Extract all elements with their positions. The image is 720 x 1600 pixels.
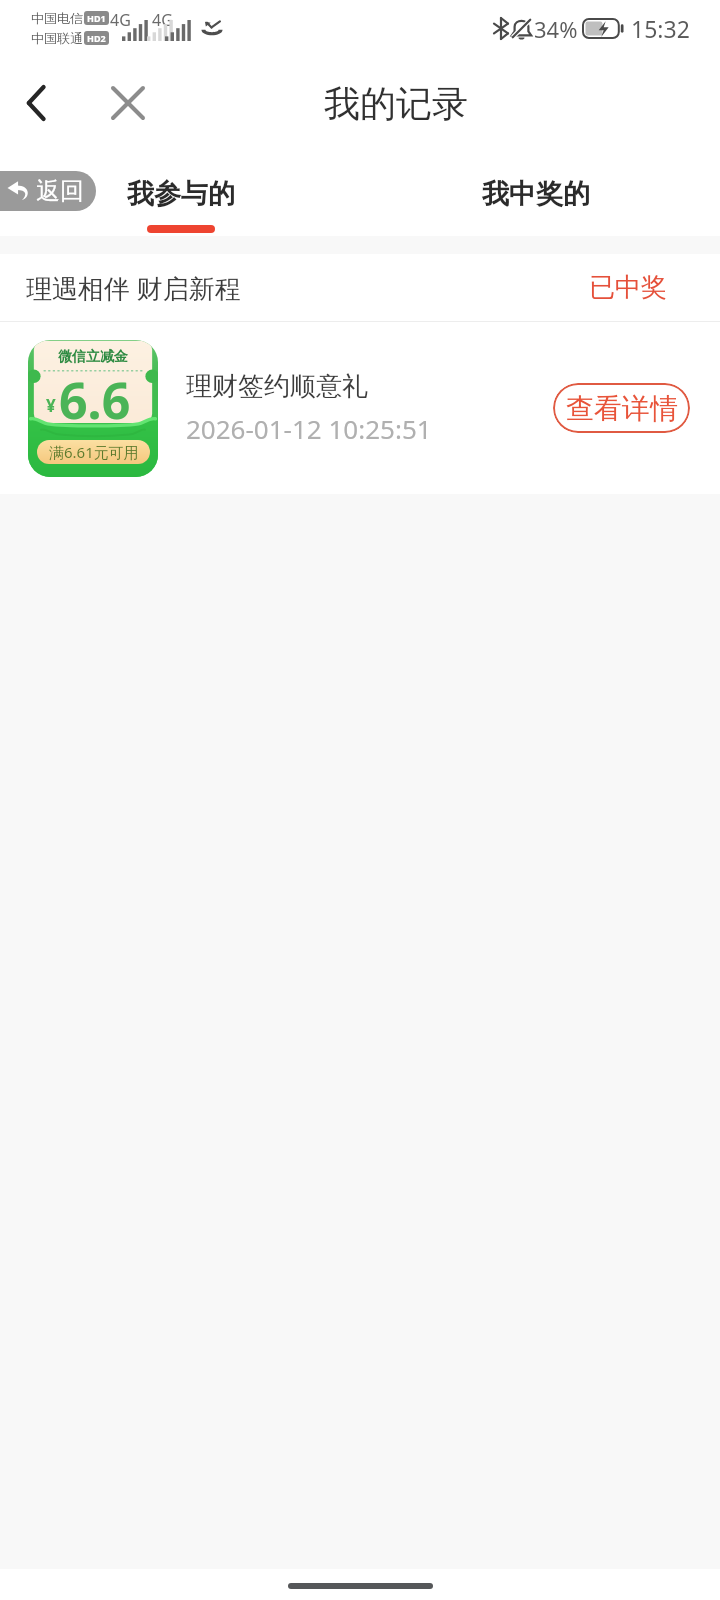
button[interactable]: 我中奖的 — [482, 177, 590, 233]
staticText: 返回 — [36, 176, 84, 206]
button[interactable]: 我参与的 — [127, 177, 235, 233]
staticText: 4G — [110, 9, 131, 31]
staticText: 微信立减金 — [58, 348, 128, 366]
staticText: 满6.61元可用 — [49, 442, 139, 462]
staticText: HD1 — [87, 12, 106, 24]
staticText: 我参与的 — [127, 177, 235, 211]
staticText: 中国电信 — [31, 10, 83, 26]
staticText: 理遇相伴 财启新程 — [26, 270, 241, 306]
button[interactable]: 查看详情 — [553, 383, 690, 433]
staticText: 4G — [152, 9, 173, 31]
button[interactable]: 理遇相伴 财启新程 — [0, 254, 720, 321]
staticText: 2026-01-12 10:25:51 — [186, 411, 432, 446]
staticText: 理财签约顺意礼 — [186, 370, 368, 403]
button[interactable]: 微信立减金 — [0, 322, 720, 494]
staticText: 我的记录 — [324, 81, 468, 126]
staticText: 6.6 — [59, 366, 131, 434]
staticText: 我中奖的 — [482, 177, 590, 211]
staticText: 查看详情 — [566, 391, 678, 426]
staticText: 已中奖 — [589, 271, 667, 304]
button[interactable]: Close — [100, 75, 156, 131]
staticText: ¥ — [46, 394, 56, 417]
button[interactable]: 返回 — [0, 171, 96, 211]
staticText: 中国联通 — [31, 30, 83, 46]
staticText: HD2 — [87, 32, 106, 44]
button[interactable]: Back — [8, 75, 64, 131]
staticText: 34% — [534, 14, 578, 44]
staticText: 15:32 — [631, 13, 690, 44]
